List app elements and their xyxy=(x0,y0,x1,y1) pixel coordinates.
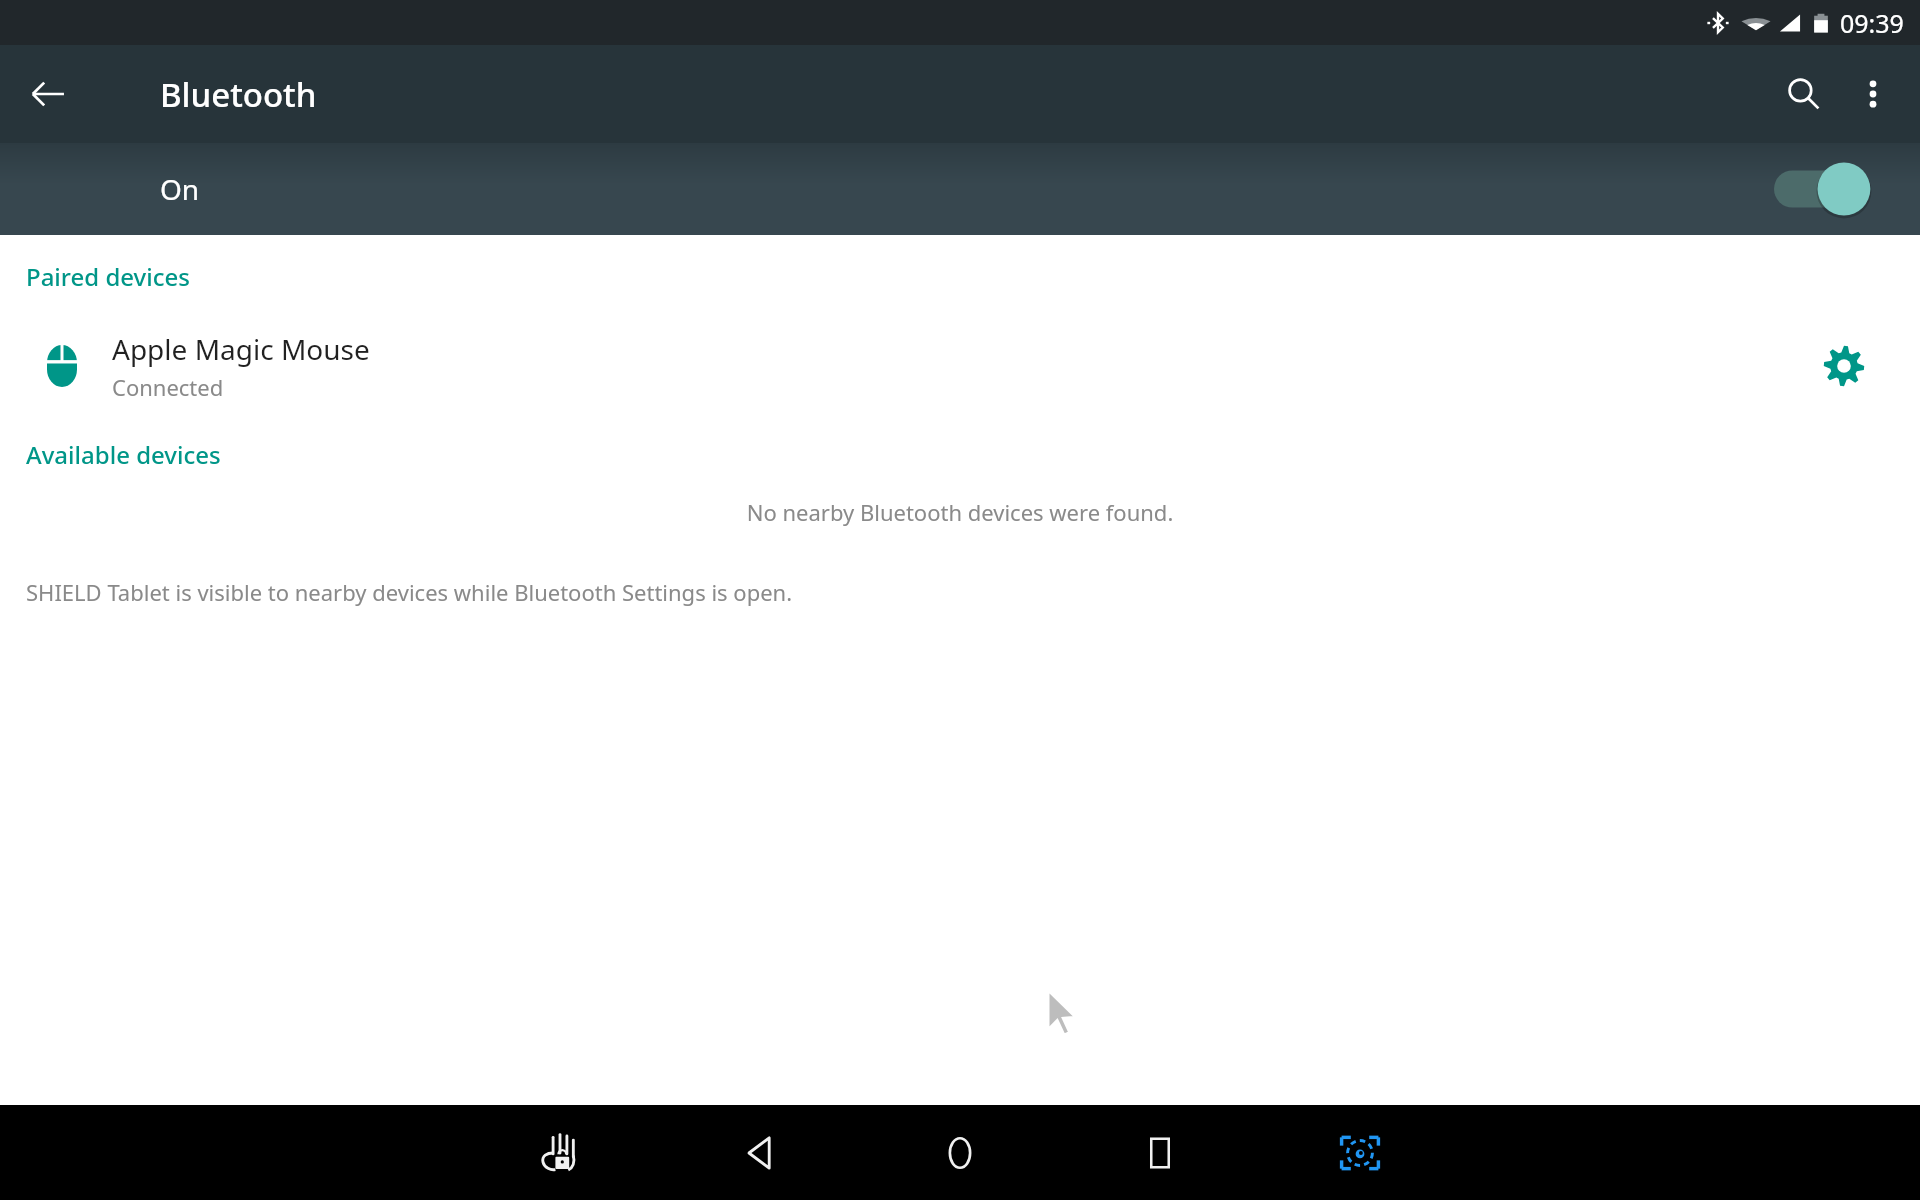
button[interactable]: Apple Magic Mouse xyxy=(0,316,1920,416)
button[interactable]: Back xyxy=(16,62,80,126)
button[interactable]: Screen capture xyxy=(1320,1113,1400,1193)
staticText: On xyxy=(160,170,200,208)
button[interactable]: Home xyxy=(920,1113,1000,1193)
other: Bluetooth on xyxy=(1774,159,1884,219)
staticText: No nearby Bluetooth devices were found. xyxy=(0,497,1920,527)
button[interactable]: Recents xyxy=(1120,1113,1200,1193)
button[interactable]: More options xyxy=(1840,61,1906,127)
staticText: Bluetooth xyxy=(160,72,317,117)
staticText: Apple Magic Mouse xyxy=(112,330,370,368)
staticText: SHIELD Tablet is visible to nearby devic… xyxy=(26,577,793,607)
button[interactable]: Accessibility xyxy=(520,1113,600,1193)
staticText: 09:39 xyxy=(1840,6,1904,40)
staticText: Connected xyxy=(112,372,224,402)
button[interactable]: Search xyxy=(1768,58,1840,130)
staticText: Paired devices xyxy=(26,260,190,293)
button[interactable]: On xyxy=(0,143,1920,235)
button[interactable]: Device settings xyxy=(1808,330,1880,402)
button[interactable]: Back xyxy=(720,1113,800,1193)
staticText: Available devices xyxy=(26,438,221,471)
